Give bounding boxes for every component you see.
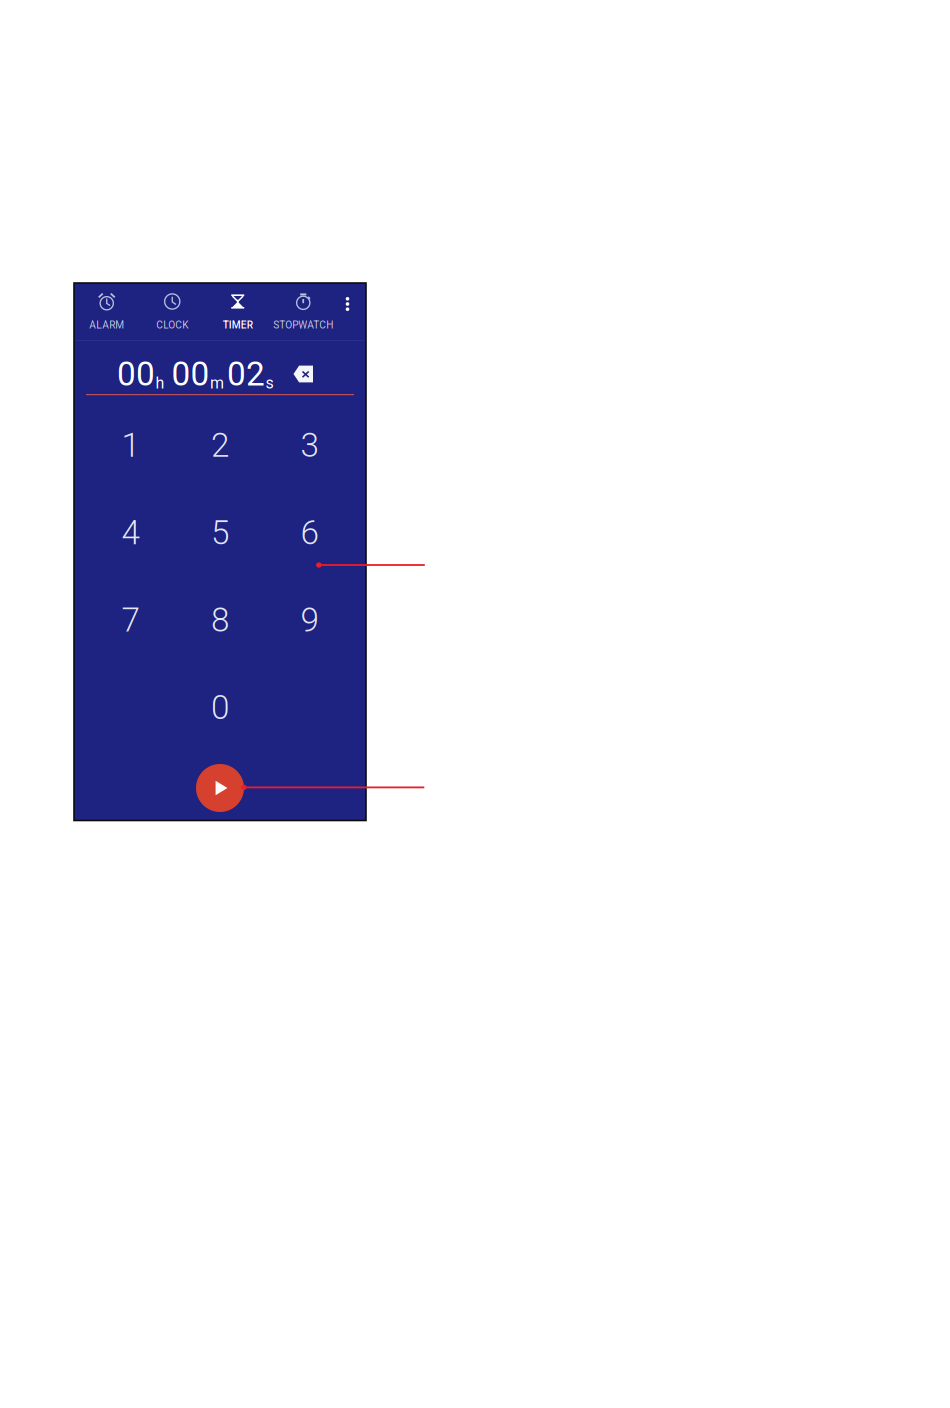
staticText: CLOCK bbox=[156, 319, 188, 331]
staticText: 9 bbox=[300, 601, 318, 640]
staticText: TIMER bbox=[223, 319, 253, 331]
button[interactable]: Delete bbox=[293, 366, 313, 382]
button[interactable]: 3 bbox=[265, 402, 354, 489]
button[interactable]: 8 bbox=[175, 576, 265, 664]
button[interactable]: CLOCK bbox=[139, 283, 205, 340]
button[interactable]: 5 bbox=[175, 489, 265, 576]
staticText: 6 bbox=[300, 513, 318, 552]
staticText: s bbox=[265, 374, 273, 393]
staticText: 0 bbox=[211, 688, 229, 727]
staticText: 7 bbox=[121, 601, 139, 640]
staticText: 1 bbox=[121, 426, 139, 465]
staticText: ALARM bbox=[89, 319, 124, 331]
staticText: 00 bbox=[171, 354, 209, 394]
button[interactable]: 2 bbox=[175, 402, 265, 489]
button[interactable]: 1 bbox=[86, 402, 175, 489]
staticText: 8 bbox=[211, 601, 229, 640]
button[interactable]: STOPWATCH bbox=[270, 283, 336, 340]
button[interactable]: 4 bbox=[86, 489, 175, 576]
staticText: 00 bbox=[117, 354, 155, 394]
staticText: m bbox=[210, 374, 224, 393]
button[interactable]: 9 bbox=[265, 576, 354, 664]
button[interactable]: 0 bbox=[175, 664, 265, 751]
button[interactable]: More options bbox=[336, 283, 366, 340]
staticText: 3 bbox=[300, 426, 318, 465]
staticText: STOPWATCH bbox=[273, 319, 333, 331]
button[interactable]: 6 bbox=[265, 489, 354, 576]
staticText: 2 bbox=[211, 426, 229, 465]
staticText: 4 bbox=[121, 513, 139, 552]
button[interactable]: ALARM bbox=[74, 283, 139, 340]
staticText: 5 bbox=[211, 513, 229, 552]
staticText: 02 bbox=[227, 354, 265, 394]
button[interactable]: Start timer bbox=[196, 764, 244, 812]
button[interactable]: 7 bbox=[86, 576, 175, 664]
button[interactable]: TIMER bbox=[205, 283, 270, 340]
staticText: h bbox=[155, 374, 164, 393]
